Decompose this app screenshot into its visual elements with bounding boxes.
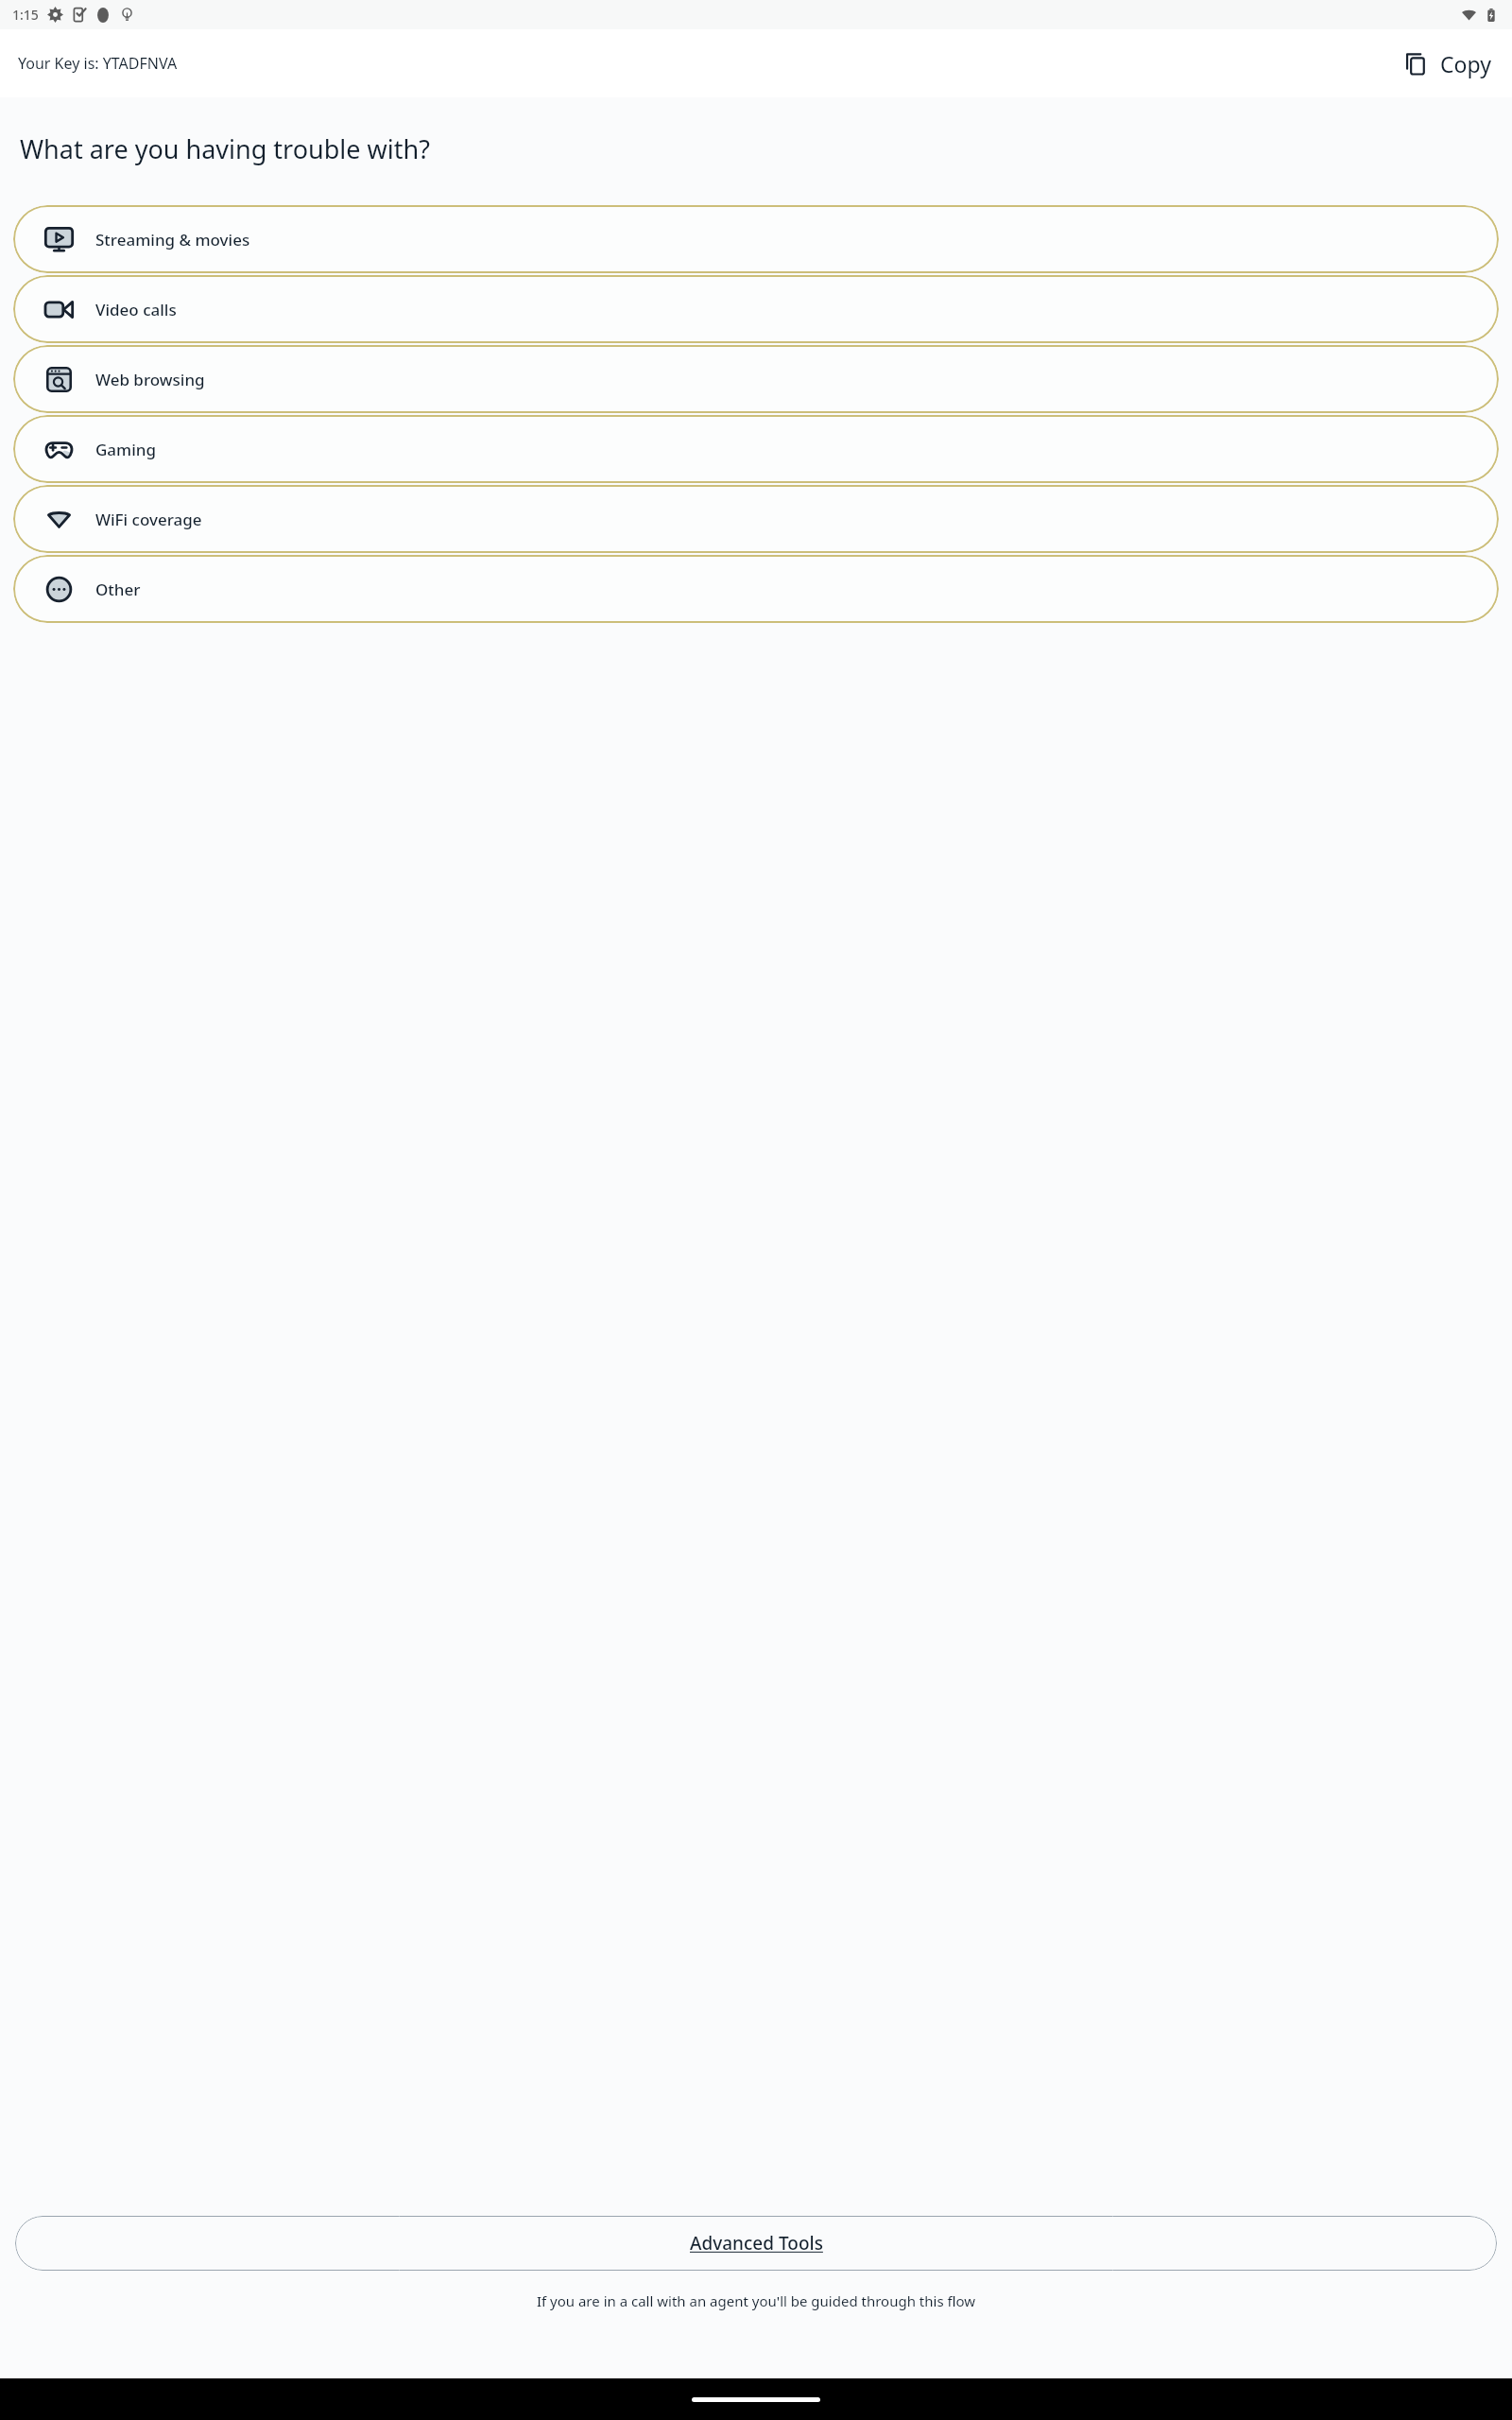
staticText: What are you having trouble with? xyxy=(20,131,430,166)
staticText: Video calls xyxy=(95,299,177,320)
staticText: Web browsing xyxy=(95,369,205,390)
button[interactable]: Video calls xyxy=(13,275,1499,343)
button[interactable]: Copy key xyxy=(1398,42,1495,86)
staticText: 1:15 xyxy=(12,6,39,24)
button[interactable]: Gaming xyxy=(13,415,1499,483)
button[interactable]: Web browsing xyxy=(13,345,1499,413)
staticText: WiFi coverage xyxy=(95,509,202,530)
button[interactable]: Advanced Tools xyxy=(15,2216,1497,2271)
button[interactable]: WiFi coverage xyxy=(13,485,1499,553)
staticText: Gaming xyxy=(95,439,156,460)
staticText: Copy xyxy=(1440,49,1491,78)
button[interactable]: Streaming & movies xyxy=(13,205,1499,273)
staticText: Other xyxy=(95,579,141,600)
staticText: Streaming & movies xyxy=(95,229,250,251)
staticText: If you are in a call with an agent you'l… xyxy=(0,2291,1512,2310)
other: Copy key xyxy=(1401,50,1429,78)
staticText: Advanced Tools xyxy=(690,2231,823,2256)
staticText: Your Key is: YTADFNVA xyxy=(18,53,178,74)
button[interactable]: Other xyxy=(13,555,1499,623)
